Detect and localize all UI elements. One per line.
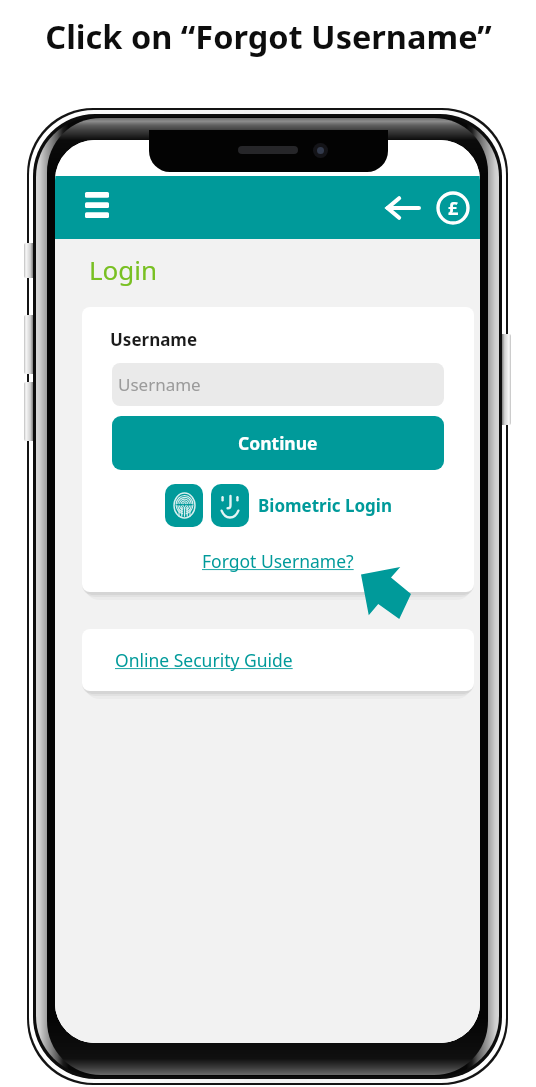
button[interactable]: Username bbox=[112, 363, 444, 406]
button[interactable]: Back bbox=[380, 186, 424, 230]
button[interactable]: Online Security Guide bbox=[82, 629, 474, 691]
button[interactable]: Forgot Username? bbox=[198, 546, 358, 576]
staticText: Username bbox=[110, 328, 198, 351]
button[interactable]: Menu bbox=[85, 182, 109, 234]
staticText: Biometric Login bbox=[258, 494, 392, 517]
staticText: £ bbox=[448, 196, 459, 221]
button[interactable]: Continue bbox=[112, 416, 444, 470]
staticText: Online Security Guide bbox=[115, 648, 293, 672]
staticText: Login bbox=[89, 252, 158, 287]
staticText: Continue bbox=[238, 431, 318, 455]
button[interactable]: Currency bbox=[433, 188, 473, 228]
button[interactable]: Fingerprint login bbox=[165, 484, 203, 527]
staticText: Click on “Forgot Username” bbox=[45, 14, 492, 58]
staticText: Forgot Username? bbox=[202, 549, 354, 573]
staticText: Username bbox=[118, 373, 201, 396]
button[interactable]: Face login bbox=[211, 484, 249, 527]
